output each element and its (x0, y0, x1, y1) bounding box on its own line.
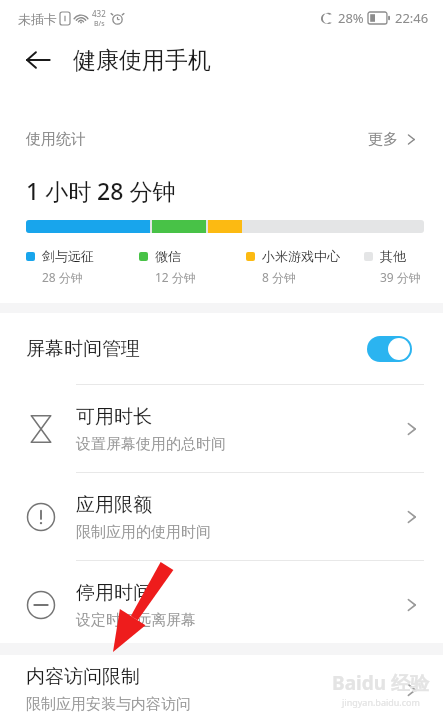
staticText: 设定时间远离屏幕 (76, 611, 196, 630)
staticText: 微信 (155, 248, 181, 264)
staticText: 8 分钟 (262, 269, 296, 285)
staticText: 更多 (368, 130, 398, 149)
staticText: 其他 (380, 248, 406, 264)
staticText: 39 分钟 (380, 269, 421, 285)
staticText: 使用统计 (26, 130, 86, 149)
staticText: 28 分钟 (42, 269, 83, 285)
button[interactable]: 可用时长 (0, 385, 443, 473)
staticText: 健康使用手机 (73, 46, 211, 75)
staticText: 应用限额 (76, 493, 152, 517)
button[interactable]: 屏幕时间管理开关 (367, 336, 412, 362)
staticText: B/s (94, 19, 105, 29)
staticText: Baidu 经验 (332, 670, 429, 696)
staticText: 限制应用安装与内容访问 (26, 695, 191, 714)
button[interactable]: 内容访问限制 (0, 655, 443, 724)
button[interactable]: 应用限额 (0, 473, 443, 561)
staticText: 限制应用的使用时间 (76, 523, 211, 542)
staticText: 设置屏幕使用的总时间 (76, 435, 226, 454)
staticText: 屏幕时间管理 (26, 337, 140, 361)
staticText: jingyan.baidu.com (342, 696, 420, 708)
staticText: 432 (92, 8, 106, 19)
staticText: 可用时长 (76, 405, 152, 429)
button[interactable]: 返回 (14, 36, 62, 84)
staticText: 22:46 (395, 9, 429, 27)
button[interactable]: 屏幕时间管理 (0, 313, 443, 385)
staticText: 内容访问限制 (26, 665, 140, 689)
staticText: 1 小时 28 分钟 (26, 175, 176, 206)
staticText: 未插卡 (18, 11, 57, 27)
staticText: 小米游戏中心 (262, 248, 340, 264)
button[interactable]: 更多 (364, 126, 423, 153)
staticText: 剑与远征 (42, 248, 94, 264)
staticText: 12 分钟 (155, 269, 196, 285)
staticText: 28% (338, 9, 364, 27)
button[interactable]: 停用时间 (0, 561, 443, 649)
staticText: 停用时间 (76, 581, 152, 605)
